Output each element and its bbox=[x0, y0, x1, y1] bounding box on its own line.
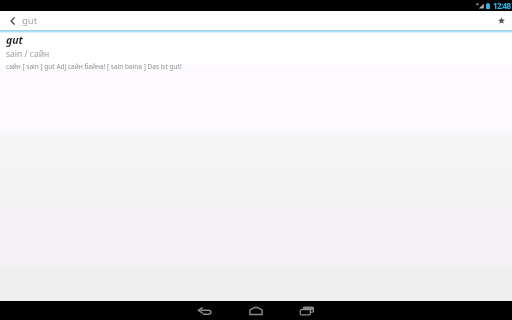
button[interactable]: Recents bbox=[290, 301, 324, 320]
button[interactable]: Home bbox=[239, 301, 273, 320]
staticText: sain / сайн bbox=[6, 48, 50, 60]
staticText: 12:48 bbox=[493, 0, 511, 11]
staticText: сайн [ sain ] gut Adj сайн байна! [ sain… bbox=[6, 62, 182, 71]
button[interactable]: Back bbox=[188, 301, 222, 320]
button[interactable]: Back bbox=[0, 11, 22, 30]
button[interactable]: Favourite bbox=[492, 11, 511, 30]
button[interactable]: gut bbox=[0, 33, 512, 131]
staticText: gut bbox=[6, 33, 23, 47]
staticText: gut bbox=[22, 14, 38, 27]
